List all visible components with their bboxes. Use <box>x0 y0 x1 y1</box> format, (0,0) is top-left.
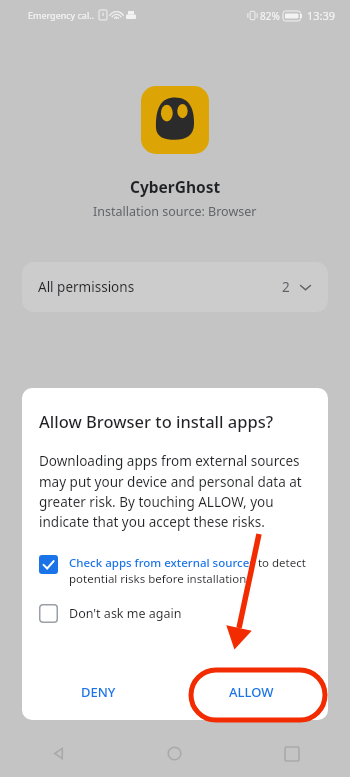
staticText: Installation source: Browser <box>93 203 257 220</box>
button[interactable]: Don't ask me again <box>22 602 328 625</box>
staticText: 82% <box>260 9 280 23</box>
button[interactable]: DENY <box>22 664 175 720</box>
staticText: 2 <box>282 278 290 296</box>
staticText: Emergency cal.. <box>28 9 95 21</box>
button[interactable]: ALLOW <box>175 664 328 720</box>
staticText: Check apps from external sources to dete… <box>69 555 311 586</box>
staticText: ALLOW <box>229 683 274 701</box>
button[interactable]: Check apps from external sources to dete… <box>22 553 328 588</box>
staticText: Allow Browser to install apps? <box>39 410 274 432</box>
staticText: 13:39 <box>307 8 336 23</box>
staticText: Don't ask me again <box>69 605 182 622</box>
button[interactable]: All permissions <box>22 262 328 312</box>
staticText: CyberGhost <box>130 176 221 197</box>
staticText: All permissions <box>38 278 135 296</box>
staticText: DENY <box>81 683 116 701</box>
staticText: Downloading apps from external sources m… <box>39 452 311 531</box>
